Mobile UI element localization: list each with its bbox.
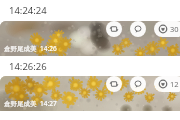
staticText: 倉野尾成美	[4, 45, 37, 53]
staticText: 12	[170, 79, 179, 89]
staticText: 14:24:24	[9, 4, 47, 17]
staticText: 倉野尾成美	[4, 100, 37, 108]
button[interactable]: 12	[154, 76, 180, 92]
button[interactable]: Repost	[106, 76, 122, 92]
staticText: 14:26	[40, 44, 57, 53]
button[interactable]: Comment	[130, 76, 146, 92]
button[interactable]: 30	[154, 21, 180, 37]
staticText: 14:26:26	[9, 60, 47, 73]
button[interactable]: Repost	[106, 21, 122, 37]
button[interactable]: Comment	[130, 21, 146, 37]
staticText: 30	[170, 24, 179, 34]
staticText: 14:27	[40, 99, 57, 108]
